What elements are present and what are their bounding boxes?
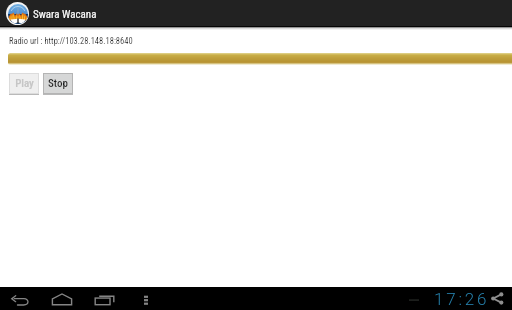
button[interactable]: More options (134, 287, 158, 310)
staticText: Swara Wacana (33, 8, 97, 21)
staticText: Radio url : http://103.28.148.18:8640 (9, 36, 133, 46)
staticText: Play (15, 77, 34, 90)
button[interactable]: Back (4, 287, 36, 310)
other: Share (491, 287, 505, 310)
staticText: Stop (48, 77, 68, 90)
staticText: 17:26 (434, 289, 490, 309)
button[interactable]: Recent apps (88, 287, 120, 310)
button[interactable]: Play (9, 73, 39, 95)
button[interactable]: Home (45, 287, 79, 310)
button[interactable]: Stop (43, 73, 73, 95)
